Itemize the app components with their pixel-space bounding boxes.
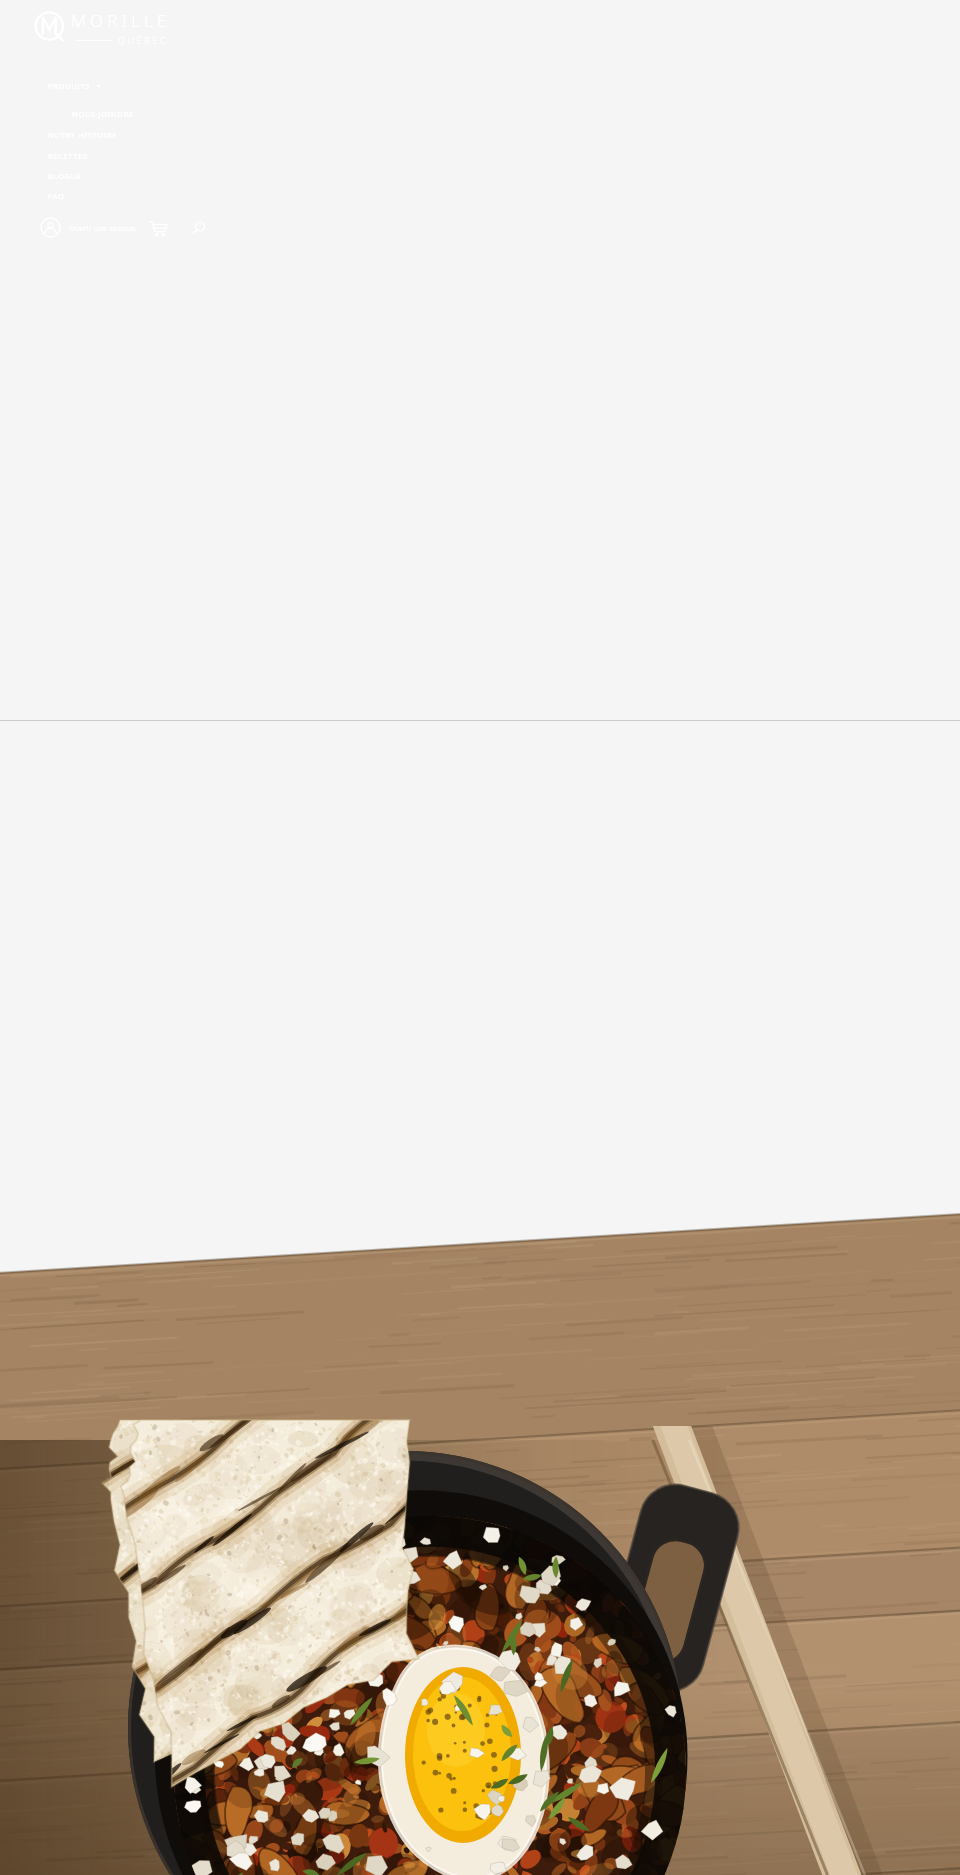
button[interactable]: BLOGUE: [48, 171, 82, 181]
button[interactable]: Cart: [148, 218, 168, 238]
staticText: Ouvrir une session: [69, 223, 136, 233]
staticText: NOUS JOINDRE: [72, 109, 134, 119]
button[interactable]: NOUS JOINDRE: [72, 109, 134, 119]
staticText: RECETTES: [48, 151, 88, 161]
button[interactable]: RECETTES: [48, 151, 88, 161]
staticText: NOTRE HISTOIRE: [48, 130, 117, 140]
button[interactable]: NOTRE HISTOIRE: [48, 130, 117, 140]
staticText: BLOGUE: [48, 171, 82, 181]
button[interactable]: PRODUITS: [48, 81, 101, 91]
staticText: FAQ: [48, 191, 65, 201]
staticText: PRODUITS: [48, 81, 91, 91]
button[interactable]: FAQ: [48, 191, 65, 201]
button[interactable]: Morille Quebec home: [38, 9, 171, 46]
